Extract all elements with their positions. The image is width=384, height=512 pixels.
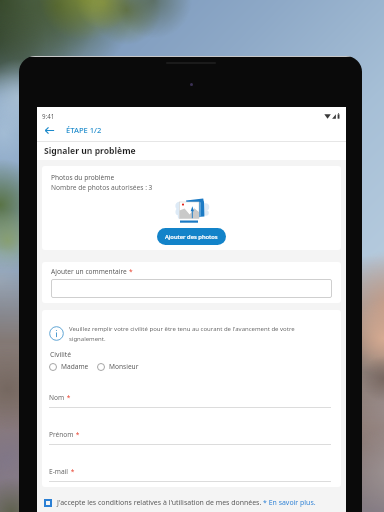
staticText: * xyxy=(65,393,71,402)
button[interactable]: E-mail xyxy=(49,467,331,482)
button[interactable]: Madame xyxy=(49,362,89,371)
staticText: Signaler un problème xyxy=(44,145,136,157)
staticText: Veuillez remplir votre civilité pour êtr… xyxy=(69,325,301,342)
button[interactable]: Monsieur xyxy=(97,362,139,371)
other: Retour xyxy=(43,124,55,136)
button[interactable]: Prénom xyxy=(49,430,331,445)
button[interactable] xyxy=(51,279,332,298)
button[interactable]: Retour xyxy=(37,124,346,136)
staticText: Civilité xyxy=(50,350,72,359)
button[interactable]: J'accepte les conditions relatives à l'u… xyxy=(37,498,346,507)
staticText: Nom xyxy=(49,393,65,402)
staticText: ÉTAPE 1/2 xyxy=(66,125,102,135)
staticText: Photos du problème xyxy=(51,173,115,182)
staticText: J'accepte les conditions relatives à l'u… xyxy=(57,498,316,507)
staticText: Monsieur xyxy=(109,362,139,371)
staticText: * xyxy=(129,267,133,276)
staticText: Ajouter un commentaire xyxy=(51,267,129,276)
staticText: Madame xyxy=(61,362,89,371)
button[interactable]: Ajouter des photos xyxy=(157,228,226,245)
staticText: 9:41 xyxy=(42,112,55,120)
staticText: * xyxy=(74,430,80,439)
staticText: Prénom xyxy=(49,430,74,439)
staticText: * xyxy=(69,467,75,476)
button[interactable]: Nom xyxy=(49,393,331,408)
staticText: E-mail xyxy=(49,467,69,476)
staticText: Nombre de photos autorisées : 3 xyxy=(51,183,153,192)
staticText: Ajouter des photos xyxy=(165,233,218,241)
